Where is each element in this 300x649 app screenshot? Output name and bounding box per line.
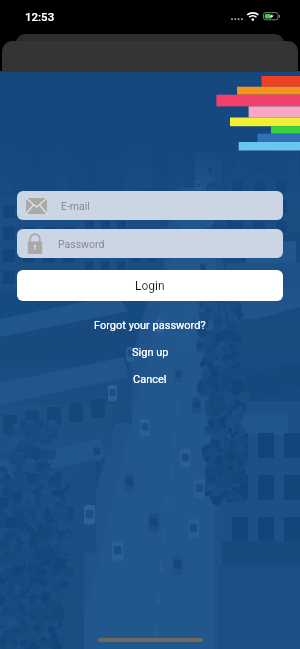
button[interactable]: E-mail [17, 191, 283, 220]
other: E-mail [26, 198, 47, 214]
staticText: Password [58, 238, 105, 250]
staticText: Cancel [133, 373, 167, 386]
button[interactable]: Cancel [0, 371, 300, 387]
button[interactable]: Forgot your password? [0, 317, 300, 333]
button[interactable]: Password [17, 229, 283, 258]
staticText: E-mail [61, 200, 90, 212]
other: Status icons [230, 10, 282, 22]
other: Password [26, 233, 44, 254]
staticText: 12:53 [25, 10, 55, 23]
staticText: Sign up [132, 346, 169, 359]
button[interactable]: Sign up [0, 344, 300, 360]
staticText: Forgot your password? [94, 319, 206, 332]
button[interactable]: Login [17, 270, 283, 301]
staticText: Login [135, 279, 165, 293]
